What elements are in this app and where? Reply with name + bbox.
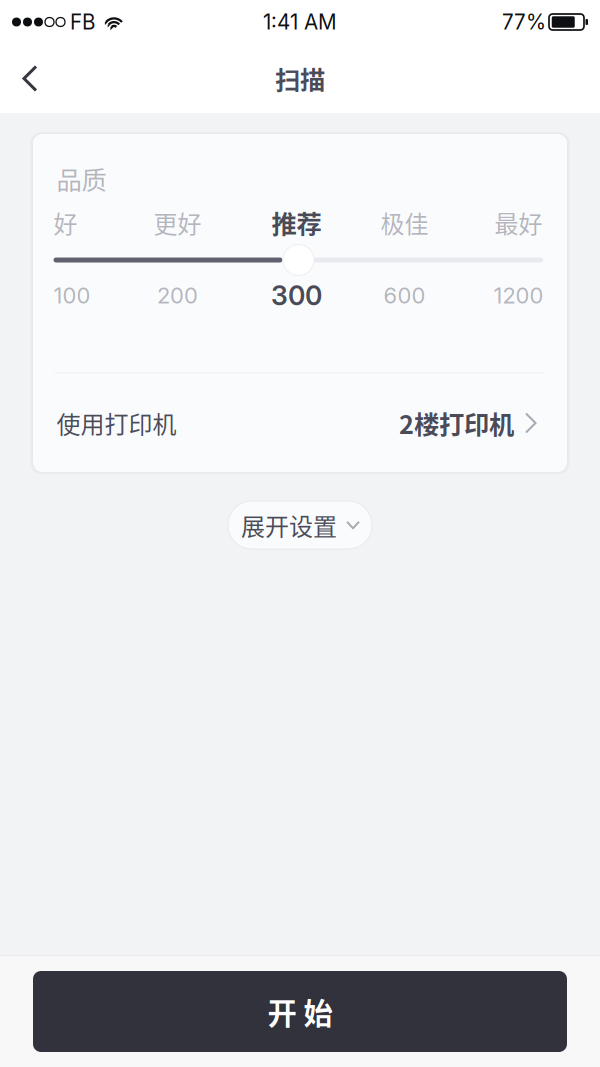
staticText: 77% bbox=[502, 9, 546, 34]
staticText: 200 bbox=[157, 282, 198, 309]
staticText: 300 bbox=[271, 279, 322, 312]
staticText: 600 bbox=[383, 282, 425, 309]
staticText: 开 始 bbox=[267, 990, 332, 1033]
staticText: 推荐 bbox=[271, 204, 321, 241]
staticText: 品质 bbox=[56, 160, 106, 197]
staticText: 100 bbox=[53, 282, 90, 309]
button[interactable]: 展开设置 bbox=[228, 501, 372, 549]
staticText: 更好 bbox=[153, 205, 201, 240]
staticText: 扫描 bbox=[275, 60, 325, 97]
staticText: 最好 bbox=[494, 205, 542, 240]
staticText: 极佳 bbox=[380, 205, 428, 240]
staticText: 1:41 AM bbox=[263, 9, 337, 34]
staticText: 好 bbox=[53, 205, 77, 240]
button[interactable]: 使用打印机 bbox=[32, 373, 567, 472]
button[interactable]: Back bbox=[0, 50, 60, 106]
staticText: 2楼打印机 bbox=[399, 405, 514, 441]
staticText: 展开设置 bbox=[241, 508, 337, 542]
staticText: 使用打印机 bbox=[56, 406, 176, 440]
staticText: FB bbox=[70, 9, 95, 34]
button[interactable]: 开 始 bbox=[33, 971, 567, 1052]
staticText: 1200 bbox=[493, 282, 543, 309]
